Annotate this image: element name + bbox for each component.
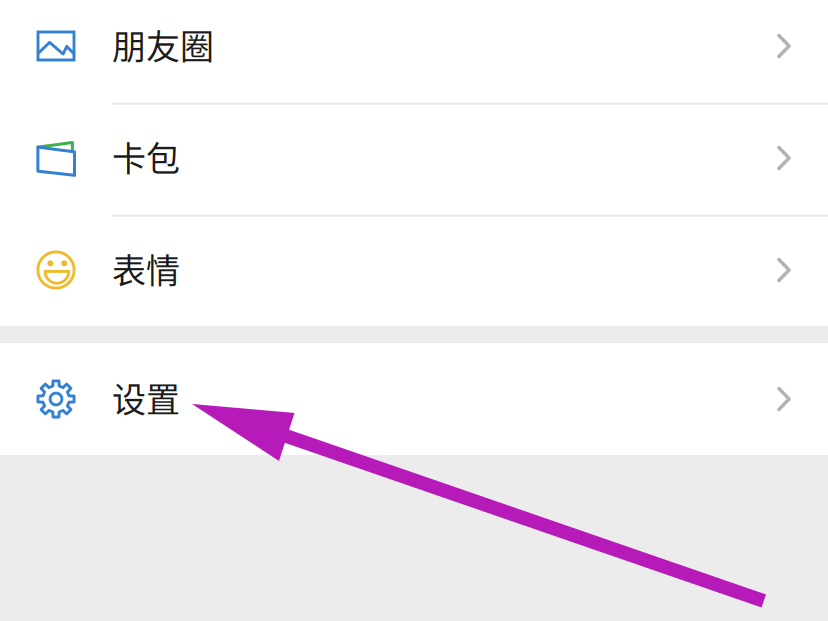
staticText: 卡包: [112, 132, 180, 181]
button[interactable]: 卡包: [0, 102, 828, 214]
staticText: 表情: [112, 244, 180, 293]
button[interactable]: 设置: [0, 343, 828, 455]
button[interactable]: 表情: [0, 214, 828, 326]
button[interactable]: 朋友圈: [0, 0, 828, 102]
staticText: 朋友圈: [112, 20, 214, 69]
staticText: 设置: [112, 373, 180, 422]
